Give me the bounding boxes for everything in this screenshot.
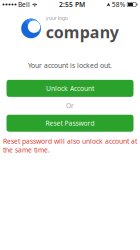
staticText: Reset password will also unlock account … (3, 137, 137, 154)
staticText: your logo (46, 14, 68, 21)
staticText: Your account is locked out. (28, 61, 112, 70)
staticText: 2:55 PM (59, 0, 85, 9)
button[interactable]: Unlock Account (6, 80, 133, 97)
staticText: Bell (18, 0, 30, 9)
staticText: Unlock Account (46, 84, 94, 93)
staticText: Reset Password (45, 119, 94, 128)
button[interactable]: Reset Password (6, 115, 133, 132)
staticText: company (46, 21, 119, 43)
staticText: 58% (112, 0, 126, 9)
staticText: Or (66, 101, 74, 110)
